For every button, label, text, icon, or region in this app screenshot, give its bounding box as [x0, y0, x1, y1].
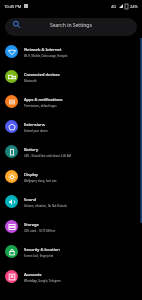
staticText: Display — [24, 172, 38, 177]
button[interactable]: Accounts — [0, 264, 142, 289]
staticText: Extend your device — [24, 129, 48, 133]
staticText: Battery — [24, 147, 39, 152]
staticText: Storage — [24, 222, 39, 227]
staticText: 24% — [130, 4, 138, 9]
staticText: Extensions — [24, 122, 45, 127]
button[interactable]: Battery — [0, 139, 142, 164]
staticText: Accounts — [24, 272, 42, 277]
staticText: Network & Internet — [24, 47, 62, 52]
button[interactable]: Connected devices — [0, 64, 142, 89]
staticText: 32% used - 10.70 GB free — [24, 229, 56, 233]
staticText: Volume, vibration, Do Not Disturb — [24, 204, 67, 208]
staticText: 24% - Should last until about 2:45 AM — [24, 154, 71, 158]
button[interactable]: Apps & notifications — [0, 89, 142, 114]
staticText: Sound — [24, 197, 37, 202]
staticText: Apps & notifications — [24, 97, 63, 102]
button[interactable]: Search in Settings — [5, 18, 137, 36]
button[interactable]: Network & Internet — [0, 39, 142, 64]
staticText: Permissions, default apps — [24, 104, 57, 108]
button[interactable]: Storage — [0, 214, 142, 239]
button[interactable]: Extensions — [0, 114, 142, 139]
staticText: Connected devices — [24, 72, 60, 77]
staticText: Bluetooth — [24, 79, 37, 83]
staticText: 10:45 PM — [4, 4, 22, 9]
staticText: Screen lock, fingerprint — [24, 254, 54, 258]
button[interactable]: Display — [0, 164, 142, 189]
staticText: Wi-Fi, Mobile, Data usage, Hotspot — [24, 54, 68, 58]
staticText: Wallpaper, sleep, font size — [24, 179, 57, 183]
staticText: 4G — [111, 4, 117, 9]
button[interactable]: Security & location — [0, 239, 142, 264]
staticText: Security & location — [24, 247, 60, 252]
button[interactable]: Sound — [0, 189, 142, 214]
staticText: WhatsApp, Google, Telegram — [24, 279, 61, 283]
staticText: Search in Settings — [50, 22, 92, 29]
